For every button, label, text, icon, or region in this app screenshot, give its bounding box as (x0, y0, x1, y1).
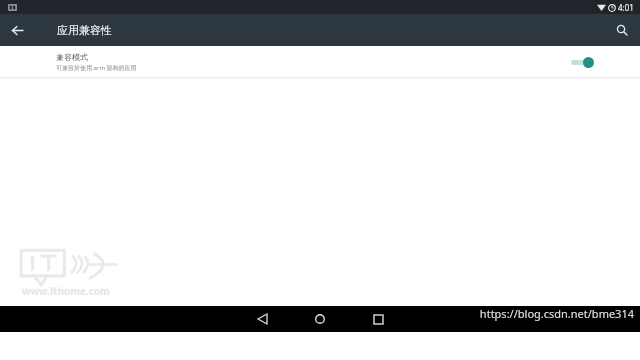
button[interactable]: Home (300, 306, 340, 332)
staticText: www.ithome.com (22, 284, 110, 298)
staticText: https://blog.csdn.net/bme314 (479, 306, 634, 321)
button[interactable]: Back (242, 306, 282, 332)
button[interactable]: 兼容模式 (0, 46, 640, 77)
staticText: 兼容模式 (56, 52, 88, 62)
button[interactable]: Search (610, 18, 634, 42)
button[interactable]: Back (5, 18, 29, 42)
staticText: 可兼容於使用 arm 架构的应用 (56, 64, 137, 72)
staticText: 应用兼容性 (57, 23, 112, 37)
button[interactable]: 兼容模式 switch (568, 54, 594, 70)
staticText: 4:01 (618, 2, 634, 13)
button[interactable]: Recent apps (358, 306, 398, 332)
